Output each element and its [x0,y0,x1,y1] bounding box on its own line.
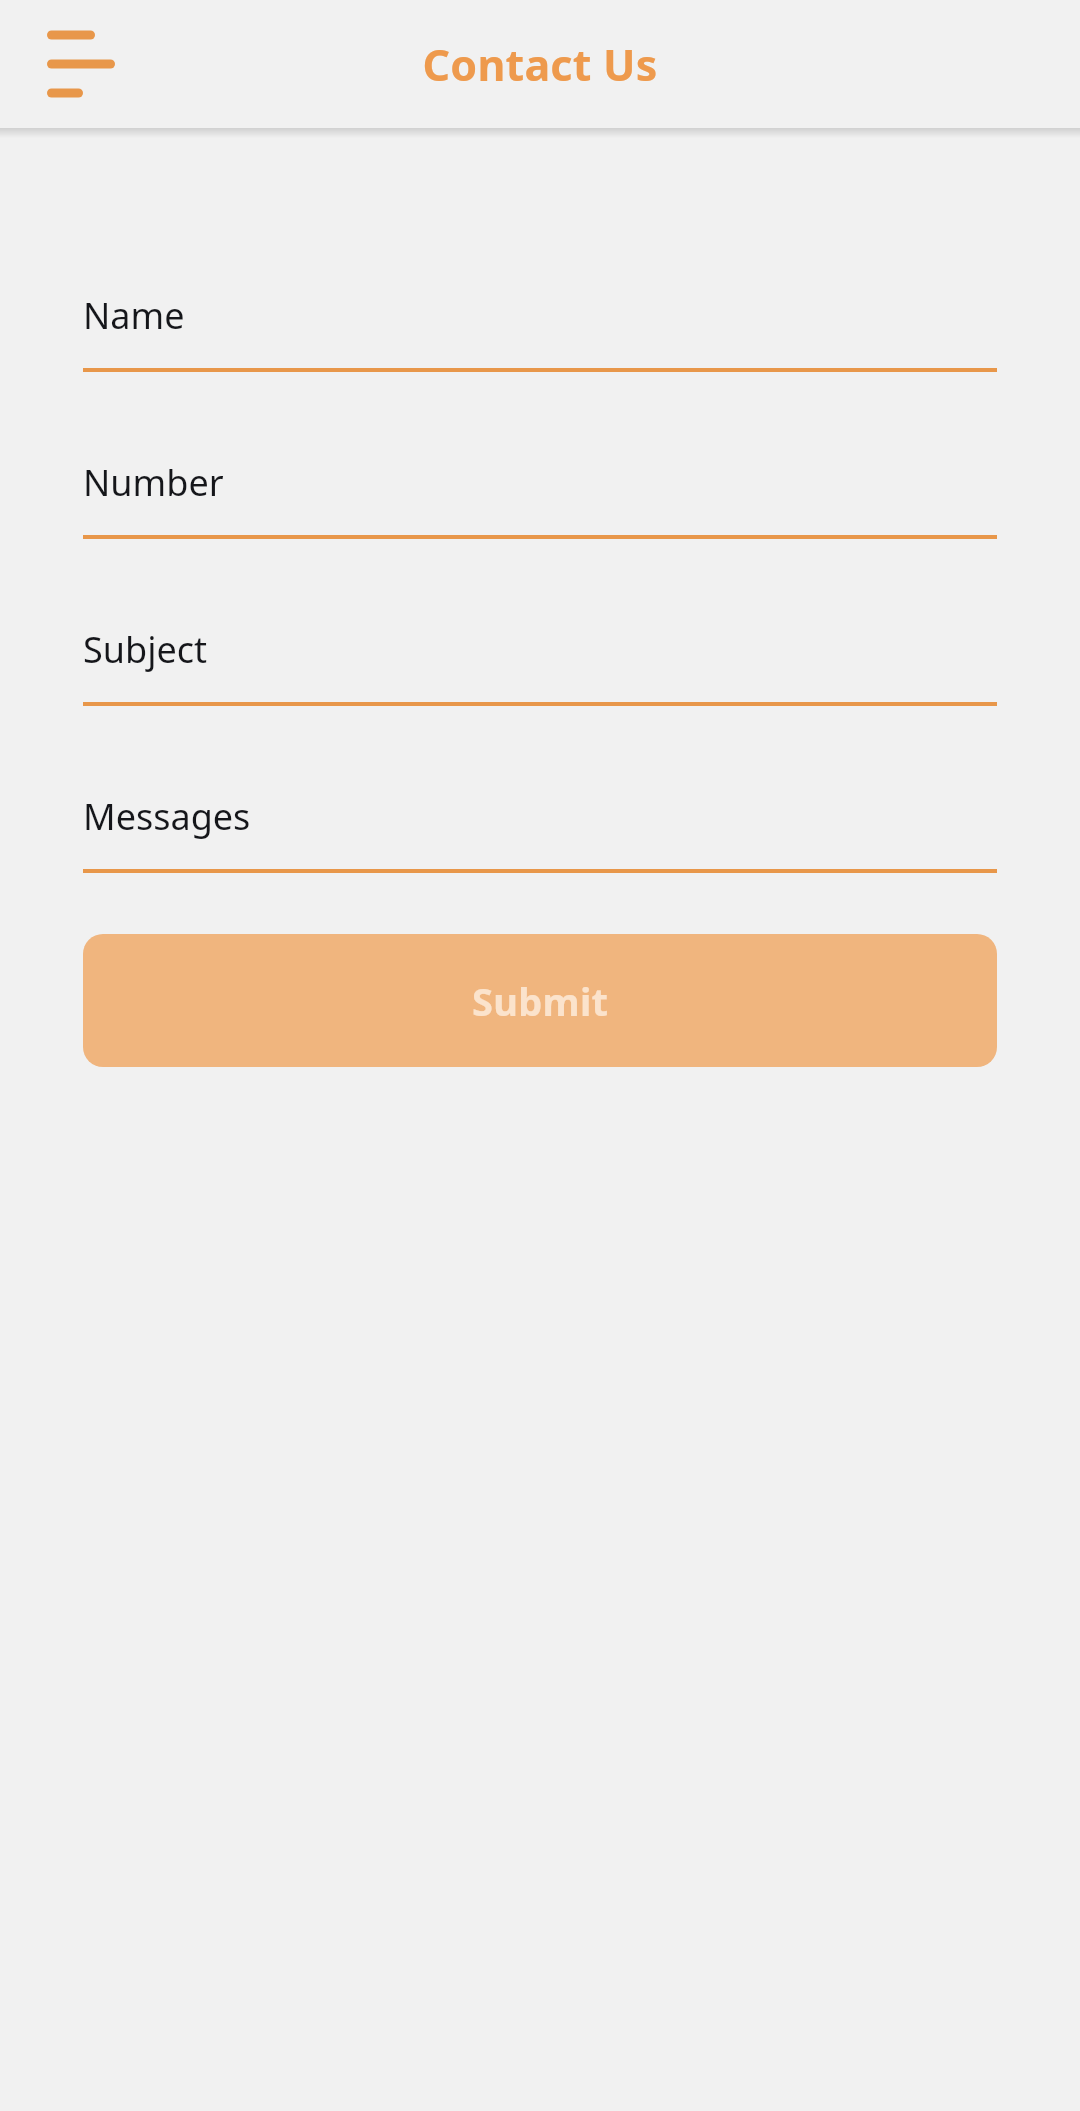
staticText: Messages [83,792,251,841]
button[interactable]: Submit [83,934,997,1067]
staticText: Subject [83,625,208,674]
button[interactable]: Name [83,263,997,372]
button[interactable]: Open navigation menu [24,16,120,112]
staticText: Name [83,291,185,340]
button[interactable]: Subject [83,597,997,706]
staticText: Submit [472,975,609,1027]
button[interactable]: Messages [83,764,997,873]
staticText: Contact Us [0,35,1080,94]
button[interactable]: Number [83,430,997,539]
staticText: Number [83,458,224,507]
